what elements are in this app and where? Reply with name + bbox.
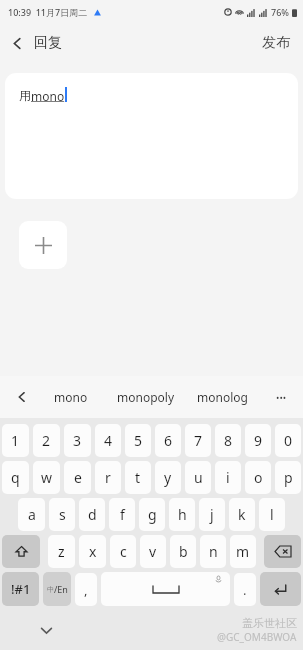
button[interactable]: w: [33, 461, 60, 494]
staticText: ,: [84, 581, 88, 599]
staticText: mono: [54, 389, 88, 405]
button[interactable]: e: [64, 461, 91, 494]
button[interactable]: q: [2, 461, 29, 494]
staticText: 7: [194, 431, 203, 450]
button[interactable]: Hide keyboard: [32, 616, 61, 645]
staticText: a: [28, 505, 36, 524]
staticText: 6: [164, 431, 173, 450]
staticText: 10:39 11月7日周二: [8, 6, 88, 18]
button[interactable]: s: [49, 498, 75, 531]
button[interactable]: 用: [5, 73, 298, 199]
button[interactable]: g: [139, 498, 165, 531]
button[interactable]: m: [230, 535, 256, 568]
staticText: mono: [31, 88, 65, 104]
staticText: 3: [73, 431, 82, 450]
staticText: p: [284, 468, 293, 487]
staticText: b: [179, 542, 188, 561]
button[interactable]: mono: [48, 381, 94, 413]
button[interactable]: x: [79, 535, 106, 568]
button[interactable]: 中: [43, 572, 71, 606]
button[interactable]: Backspace: [264, 535, 301, 568]
button[interactable]: 5: [125, 424, 151, 457]
staticText: u: [194, 468, 203, 487]
button[interactable]: o: [245, 461, 271, 494]
staticText: /En: [54, 583, 68, 595]
staticText: f: [120, 505, 125, 524]
staticText: •••: [276, 391, 287, 403]
staticText: 2: [42, 431, 51, 450]
button[interactable]: monolog: [191, 381, 254, 413]
button[interactable]: Enter: [260, 572, 301, 606]
button[interactable]: 4: [95, 424, 121, 457]
staticText: @GC_OM4BWOA: [217, 630, 297, 644]
button[interactable]: p: [275, 461, 301, 494]
staticText: x: [89, 542, 97, 561]
button[interactable]: 0: [275, 424, 301, 457]
button[interactable]: l: [259, 498, 285, 531]
button[interactable]: Space: [101, 572, 230, 606]
button[interactable]: d: [79, 498, 105, 531]
button[interactable]: b: [170, 535, 196, 568]
staticText: l: [270, 505, 274, 524]
button[interactable]: h: [169, 498, 195, 531]
button[interactable]: f: [109, 498, 135, 531]
button[interactable]: 3: [64, 424, 91, 457]
button[interactable]: 2: [33, 424, 60, 457]
button[interactable]: 7: [185, 424, 211, 457]
button[interactable]: z: [48, 535, 75, 568]
button[interactable]: c: [110, 535, 136, 568]
button[interactable]: 1: [2, 424, 29, 457]
staticText: e: [74, 468, 82, 487]
staticText: 0: [284, 431, 293, 450]
button[interactable]: y: [155, 461, 181, 494]
staticText: 回复: [34, 34, 62, 52]
staticText: c: [120, 542, 127, 561]
staticText: y: [164, 468, 172, 487]
button[interactable]: Back: [0, 28, 72, 58]
staticText: j: [210, 505, 214, 524]
button[interactable]: More: [270, 385, 293, 409]
button[interactable]: Add photo: [19, 221, 67, 269]
staticText: w: [41, 468, 53, 487]
staticText: r: [105, 468, 111, 487]
button[interactable]: k: [229, 498, 255, 531]
staticText: i: [226, 468, 230, 487]
staticText: monopoly: [117, 389, 175, 405]
staticText: 中: [47, 585, 54, 594]
staticText: 8: [224, 431, 233, 450]
staticText: 9: [254, 431, 263, 450]
staticText: s: [59, 505, 66, 524]
button[interactable]: i: [215, 461, 241, 494]
staticText: k: [238, 505, 246, 524]
button[interactable]: .: [234, 573, 256, 606]
button[interactable]: 发布: [249, 27, 303, 59]
button[interactable]: monopoly: [111, 381, 181, 413]
staticText: z: [58, 542, 65, 561]
button[interactable]: 8: [215, 424, 241, 457]
staticText: m: [236, 542, 250, 561]
staticText: 76%: [271, 6, 289, 18]
button[interactable]: 6: [155, 424, 181, 457]
staticText: n: [209, 542, 218, 561]
button[interactable]: r: [95, 461, 121, 494]
staticText: !#1: [11, 580, 31, 598]
staticText: 发布: [262, 34, 290, 52]
button[interactable]: 9: [245, 424, 271, 457]
staticText: 5: [134, 431, 143, 450]
button[interactable]: j: [199, 498, 225, 531]
staticText: h: [178, 505, 187, 524]
button[interactable]: n: [200, 535, 226, 568]
staticText: q: [11, 468, 20, 487]
button[interactable]: Shift: [2, 535, 40, 568]
button[interactable]: ,: [75, 573, 97, 606]
button[interactable]: Previous: [10, 385, 34, 409]
button[interactable]: a: [18, 498, 45, 531]
staticText: 用: [19, 88, 31, 103]
staticText: d: [88, 505, 97, 524]
button[interactable]: !#1: [2, 572, 39, 606]
button[interactable]: u: [185, 461, 211, 494]
button[interactable]: v: [140, 535, 166, 568]
button[interactable]: t: [125, 461, 151, 494]
staticText: g: [148, 505, 157, 524]
staticText: o: [254, 468, 263, 487]
